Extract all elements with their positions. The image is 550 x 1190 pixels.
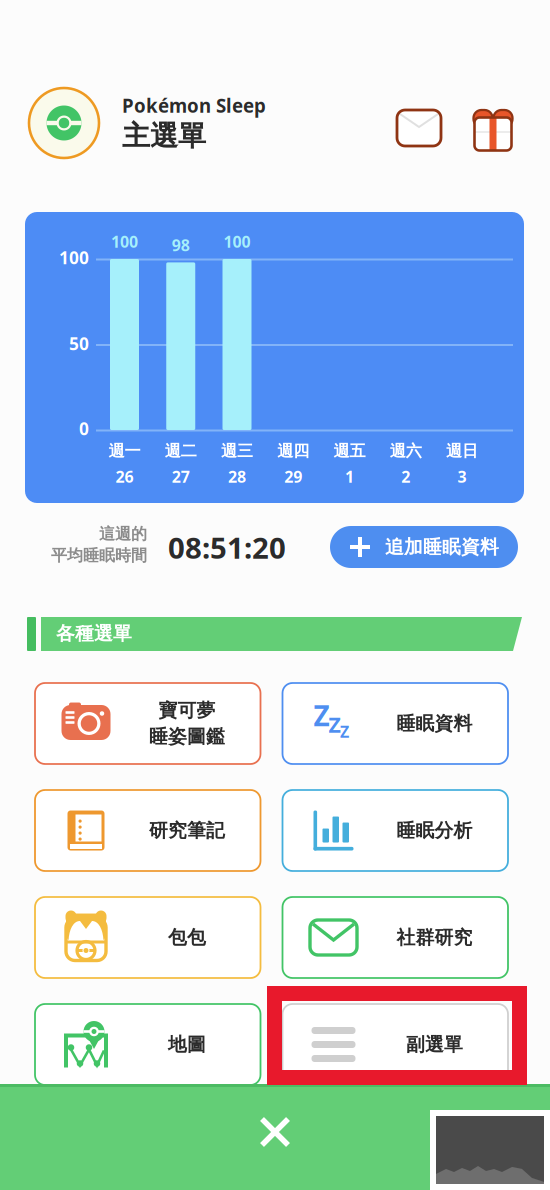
staticText: 100 (111, 231, 138, 252)
button[interactable]: 研究筆記 (35, 790, 260, 871)
staticText: 98 (172, 234, 190, 256)
staticText: 社群研究 (396, 926, 472, 949)
staticText: 地圖 (168, 1033, 206, 1056)
button[interactable]: 副選單 (282, 1004, 508, 1085)
staticText: 100 (59, 246, 89, 269)
staticText: 0 (79, 417, 89, 440)
staticText: 平均睡眠時間 (51, 546, 147, 565)
staticText: 3 (457, 466, 466, 487)
button[interactable]: 睡眠分析 (282, 790, 508, 871)
staticText: 包包 (168, 926, 206, 949)
staticText: 各種選單 (56, 622, 132, 645)
staticText: 副選單 (406, 1033, 463, 1056)
staticText: 28 (228, 466, 246, 487)
staticText: 週三 (221, 441, 253, 461)
button[interactable]: Mail (396, 108, 442, 148)
staticText: 研究筆記 (149, 819, 225, 842)
staticText: 週二 (165, 441, 197, 461)
staticText: 週日 (446, 441, 478, 461)
button[interactable]: Z (282, 683, 508, 764)
staticText: 追加睡眠資料 (385, 535, 499, 558)
button[interactable]: 社群研究 (282, 897, 508, 978)
staticText: 睡眠分析 (396, 819, 472, 842)
staticText: 週五 (333, 441, 365, 461)
button[interactable]: Gifts (472, 104, 514, 146)
button[interactable]: 地圖 (35, 1004, 260, 1085)
staticText: Z (340, 721, 349, 742)
staticText: 週六 (390, 441, 422, 461)
staticText: 這週的 (99, 524, 147, 544)
button[interactable]: 追加睡眠資料 (330, 526, 518, 568)
staticText: 1 (345, 466, 354, 487)
staticText: Z (313, 697, 329, 734)
staticText: 週四 (277, 441, 309, 461)
staticText: 主選單 (122, 119, 206, 153)
staticText: 2 (401, 466, 410, 487)
staticText: Pokémon Sleep (122, 93, 266, 118)
staticText: 08:51:20 (168, 528, 286, 567)
button[interactable]: 寶可夢 (35, 683, 260, 764)
button[interactable]: 包包 (35, 897, 260, 978)
staticText: 27 (172, 466, 190, 487)
staticText: 50 (69, 332, 89, 355)
staticText: 29 (284, 466, 302, 487)
staticText: 26 (115, 466, 133, 487)
staticText: 睡眠資料 (396, 712, 472, 735)
staticText: Z (328, 710, 340, 739)
staticText: 寶可夢 (158, 699, 215, 722)
button[interactable]: Close (253, 1110, 297, 1154)
staticText: 100 (223, 231, 250, 252)
staticText: 睡姿圖鑑 (149, 725, 225, 748)
staticText: 週一 (108, 441, 140, 461)
